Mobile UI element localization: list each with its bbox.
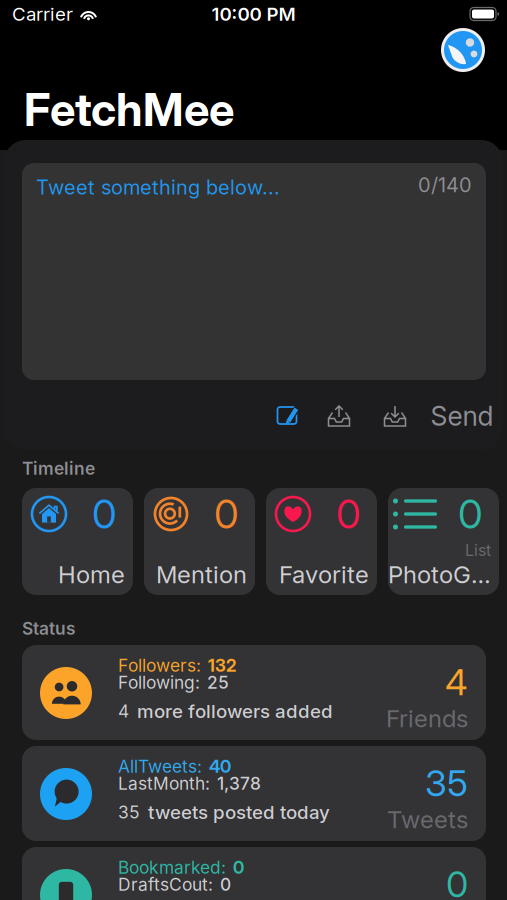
button[interactable]: 0 [266,488,377,595]
staticText: LastMonth: [118,773,210,794]
button[interactable]: Followers: [22,645,486,740]
staticText: Carrier [12,3,73,25]
staticText: 0 [458,490,483,538]
staticText: 4 [445,660,468,704]
staticText: List [465,541,491,560]
button[interactable]: Account [441,28,485,72]
staticText: 0/140 [418,173,472,197]
staticText: Favorite [279,560,369,589]
staticText: Tweets [387,805,468,834]
button[interactable]: 0 [144,488,255,595]
staticText: 0 [233,857,244,878]
staticText: 35 [425,761,468,805]
staticText: 132 [208,655,236,676]
staticText: 25 [207,672,229,693]
staticText: AllTweets: [118,756,202,777]
staticText: PhotoG... [388,560,491,589]
button[interactable]: 0 [22,488,133,595]
button[interactable]: Send [423,401,501,431]
staticText: Mention [156,560,247,589]
staticText: Tweet something below... [36,175,280,199]
button[interactable]: Bookmarked: [22,847,486,900]
button[interactable]: 0 [388,488,499,595]
staticText: Following: [118,672,200,693]
button[interactable]: AllTweets: [22,746,486,841]
staticText: 4 [118,701,129,722]
staticText: 35 [118,802,140,823]
staticText: FetchMee [24,82,234,137]
staticText: 0 [214,490,239,538]
staticText: more followers added [137,700,333,723]
staticText: Followers: [118,655,201,676]
staticText: DraftsCout: [118,874,213,895]
staticText: 1,378 [217,773,261,794]
staticText: Status [22,618,76,639]
staticText: 10:00 PM [211,3,295,25]
staticText: tweets posted today [148,801,330,824]
staticText: 40 [209,756,231,777]
button[interactable]: Compose [265,401,311,431]
staticText: 0 [446,862,468,900]
staticText: Send [430,400,493,432]
staticText: 0 [92,490,117,538]
staticText: 0 [220,874,231,895]
staticText: 0 [336,490,361,538]
button[interactable]: Export drafts [311,401,367,431]
staticText: Bookmarked: [118,857,226,878]
staticText: Friends [386,704,468,733]
staticText: Home [58,560,125,589]
staticText: Timeline [22,458,95,479]
button[interactable]: Import drafts [367,401,423,431]
